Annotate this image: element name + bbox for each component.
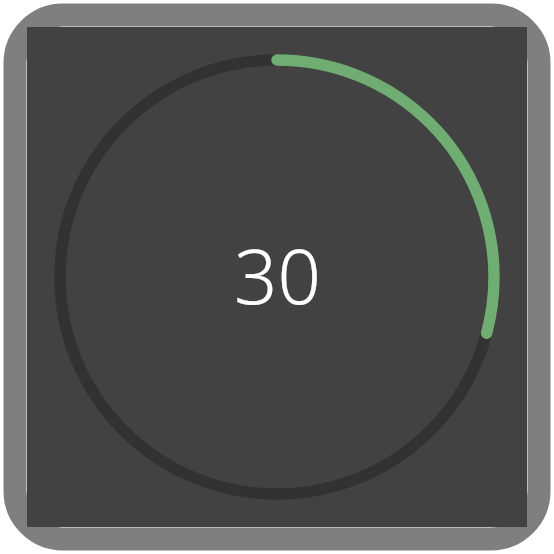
staticText: 30	[234, 223, 321, 327]
button[interactable]: Timer progress 30	[0, 0, 554, 554]
